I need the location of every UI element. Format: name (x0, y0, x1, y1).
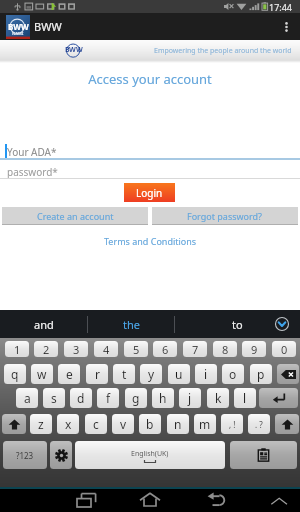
staticText: j (188, 390, 192, 406)
button[interactable]: 0 (272, 341, 296, 357)
button[interactable]: 8 (213, 341, 237, 357)
staticText: . ? (255, 419, 263, 430)
staticText: the (123, 317, 140, 332)
staticText: z (38, 416, 44, 432)
button[interactable]: c (85, 414, 107, 434)
staticText: p (257, 366, 265, 382)
button[interactable]: m (194, 414, 216, 434)
staticText: a (24, 390, 31, 406)
button[interactable]: Space (75, 441, 225, 469)
button[interactable]: Your ADA* (0, 144, 300, 160)
staticText: 9 (251, 342, 258, 357)
staticText: i (204, 366, 208, 382)
staticText: Forgot password? (187, 210, 263, 222)
button[interactable]: b (139, 414, 161, 434)
button[interactable]: Recents (70, 489, 102, 512)
button[interactable]: i (195, 364, 217, 384)
staticText: NAMI (12, 31, 24, 36)
button[interactable]: o (222, 364, 244, 384)
staticText: l (243, 390, 247, 406)
staticText: 2 (43, 342, 50, 357)
staticText: ?123 (16, 450, 34, 461)
button[interactable]: password* (0, 164, 300, 180)
staticText: o (229, 366, 237, 382)
button[interactable]: the (88, 310, 174, 338)
button[interactable]: f (97, 388, 119, 408)
button[interactable]: Home (134, 489, 166, 512)
button[interactable]: 2 (34, 341, 58, 357)
staticText: Access your account (0, 70, 300, 88)
button[interactable]: h (152, 388, 174, 408)
staticText: BWW (34, 19, 62, 34)
button[interactable]: Settings (50, 441, 72, 469)
button[interactable]: Shift (275, 414, 299, 434)
button[interactable]: r (86, 364, 108, 384)
button[interactable]: Clipboard (230, 441, 297, 469)
staticText: 6 (162, 342, 169, 357)
button[interactable]: g (125, 388, 147, 408)
button[interactable]: v (112, 414, 134, 434)
staticText: and (34, 317, 54, 332)
staticText: 7 (192, 342, 199, 357)
button[interactable]: More options (276, 13, 296, 40)
staticText: Empowering the people around the world (154, 46, 292, 56)
button[interactable]: Hide keyboard (264, 489, 294, 512)
button[interactable]: z (30, 414, 52, 434)
button[interactable]: Login (124, 183, 175, 202)
button[interactable]: Shift (2, 414, 26, 434)
button[interactable]: 5 (124, 341, 148, 357)
button[interactable]: ?123 (3, 441, 47, 469)
button[interactable]: 9 (242, 341, 266, 357)
button[interactable]: e (58, 364, 80, 384)
button[interactable]: and (0, 310, 87, 338)
staticText: W (69, 45, 76, 55)
button[interactable]: Enter (259, 388, 298, 408)
button[interactable]: to (175, 310, 300, 338)
button[interactable]: t (113, 364, 135, 384)
staticText: d (77, 390, 85, 406)
button[interactable]: l (234, 388, 256, 408)
staticText: 5 (133, 342, 140, 357)
staticText: q (11, 366, 19, 382)
button[interactable]: Back (200, 489, 232, 512)
staticText: 0 (281, 342, 288, 357)
button[interactable]: Create an account (2, 207, 148, 225)
button[interactable]: 3 (64, 341, 88, 357)
button[interactable]: . ? (248, 414, 270, 434)
button[interactable]: x (57, 414, 79, 434)
staticText: f (106, 390, 111, 406)
staticText: r (95, 366, 100, 382)
staticText: to (232, 317, 243, 332)
button[interactable]: 1 (5, 341, 29, 357)
button[interactable]: 7 (183, 341, 207, 357)
button[interactable]: Terms and Conditions (104, 235, 197, 247)
staticText: 1 (14, 342, 21, 357)
button[interactable]: a (16, 388, 38, 408)
button[interactable]: 6 (153, 341, 177, 357)
button[interactable]: n (167, 414, 189, 434)
button[interactable]: s (43, 388, 65, 408)
staticText: h (159, 390, 167, 406)
staticText: 17:44 (269, 1, 293, 13)
button[interactable]: j (179, 388, 201, 408)
button[interactable]: q (4, 364, 26, 384)
button[interactable]: , ! (221, 414, 243, 434)
button[interactable]: More suggestions (264, 310, 300, 338)
staticText: Create an account (37, 210, 114, 222)
staticText: n (174, 416, 182, 432)
button[interactable]: y (140, 364, 162, 384)
staticText: password* (7, 165, 58, 179)
button[interactable]: 4 (94, 341, 118, 357)
staticText: Login (136, 186, 163, 200)
button[interactable]: p (250, 364, 272, 384)
staticText: t (122, 366, 127, 382)
staticText: , ! (229, 419, 236, 430)
button[interactable]: u (168, 364, 190, 384)
button[interactable]: w (31, 364, 53, 384)
button[interactable]: k (207, 388, 229, 408)
button[interactable]: d (70, 388, 92, 408)
staticText: 8 (222, 342, 229, 357)
staticText: k (215, 390, 222, 406)
button[interactable]: Forgot password? (152, 207, 298, 225)
button[interactable]: Backspace (277, 364, 299, 384)
